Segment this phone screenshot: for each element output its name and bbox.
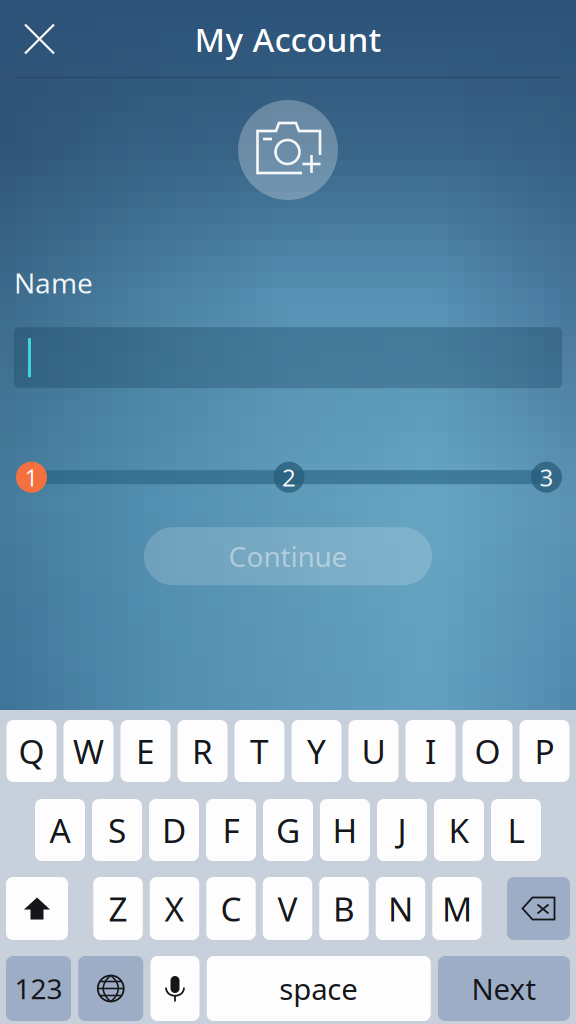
button[interactable]: Y [291, 720, 341, 782]
button[interactable]: Add profile photo [238, 100, 338, 200]
staticText: Z [108, 886, 127, 931]
staticText: A [49, 808, 70, 852]
button[interactable]: Dictate [150, 956, 199, 1021]
staticText: J [397, 808, 406, 852]
button[interactable]: Next [438, 956, 570, 1021]
staticText: E [136, 729, 155, 773]
button[interactable]: F [206, 799, 256, 861]
staticText: Continue [228, 538, 347, 575]
staticText: N [388, 886, 413, 931]
staticText: M [442, 886, 472, 931]
staticText: My Account [194, 17, 381, 61]
staticText: L [507, 808, 524, 852]
button[interactable]: Close [15, 14, 64, 63]
button[interactable]: E [120, 720, 170, 782]
button[interactable]: 123 [6, 956, 71, 1021]
button[interactable]: P [519, 720, 569, 782]
button[interactable]: J [377, 799, 427, 861]
button[interactable]: K [434, 799, 484, 861]
staticText: V [277, 886, 297, 931]
button[interactable]: G [263, 799, 313, 861]
staticText: 123 [14, 970, 62, 1007]
button[interactable]: Q [6, 720, 56, 782]
staticText: Next [471, 969, 536, 1008]
staticText: K [448, 808, 469, 852]
button[interactable]: S [92, 799, 142, 861]
button[interactable]: Next keyboard [78, 956, 143, 1021]
button[interactable]: Shift [6, 877, 68, 940]
button[interactable]: Z [93, 877, 143, 940]
button[interactable]: Continue [144, 527, 432, 585]
staticText: Name [14, 264, 93, 301]
button[interactable]: W [63, 720, 113, 782]
staticText: 2 [282, 461, 296, 493]
button[interactable]: X [150, 877, 199, 940]
button[interactable]: 2 [273, 462, 304, 493]
staticText: P [534, 729, 554, 773]
button[interactable]: C [206, 877, 256, 940]
staticText: D [162, 808, 186, 852]
staticText: O [474, 729, 500, 773]
staticText: C [220, 886, 241, 931]
button[interactable]: 3 [531, 462, 562, 493]
button[interactable]: R [177, 720, 227, 782]
staticText: 1 [24, 461, 38, 493]
button[interactable]: V [263, 877, 312, 940]
button[interactable]: I [405, 720, 455, 782]
staticText: space [279, 969, 358, 1008]
staticText: H [332, 808, 357, 852]
staticText: F [222, 808, 239, 852]
staticText: R [192, 729, 213, 773]
button[interactable]: A [35, 799, 85, 861]
button[interactable]: H [320, 799, 370, 861]
staticText: T [250, 729, 269, 773]
button[interactable]: space [207, 956, 431, 1021]
button[interactable]: L [491, 799, 541, 861]
staticText: Q [18, 729, 44, 773]
staticText: Y [307, 729, 326, 773]
button[interactable]: Delete [507, 877, 570, 940]
staticText: I [425, 729, 436, 773]
button[interactable]: B [319, 877, 369, 940]
staticText: X [164, 886, 184, 931]
button[interactable]: T [234, 720, 284, 782]
button[interactable]: U [348, 720, 398, 782]
staticText: W [73, 729, 104, 773]
button[interactable]: O [462, 720, 512, 782]
staticText: U [361, 729, 385, 773]
button[interactable]: D [149, 799, 199, 861]
staticText: 3 [539, 461, 553, 493]
button[interactable]: M [432, 877, 482, 940]
button[interactable]: 1 [16, 462, 47, 493]
staticText: S [108, 808, 126, 852]
staticText: G [276, 808, 300, 852]
staticText: B [333, 886, 355, 931]
button[interactable]: N [376, 877, 425, 940]
